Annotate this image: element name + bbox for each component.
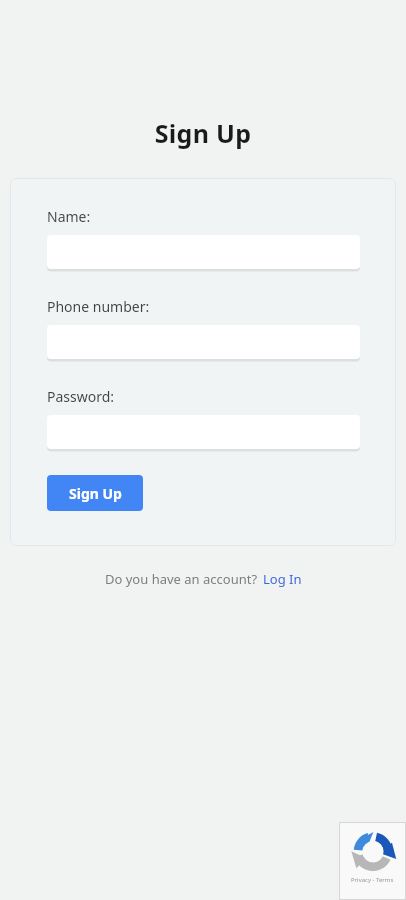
- staticText: Phone number:: [47, 297, 150, 316]
- staticText: Name:: [47, 207, 91, 226]
- button[interactable]: Log In: [263, 570, 302, 588]
- button[interactable]: reCAPTCHA Privacy and Terms: [339, 822, 406, 900]
- staticText: Do you have an account?: [105, 570, 258, 588]
- staticText: Sign Up: [69, 484, 122, 503]
- staticText: Privacy - Terms: [351, 876, 394, 884]
- staticText: Sign Up: [0, 116, 406, 150]
- staticText: Password:: [47, 387, 115, 406]
- staticText: Log In: [263, 570, 302, 588]
- button[interactable]: Sign Up: [47, 475, 143, 511]
